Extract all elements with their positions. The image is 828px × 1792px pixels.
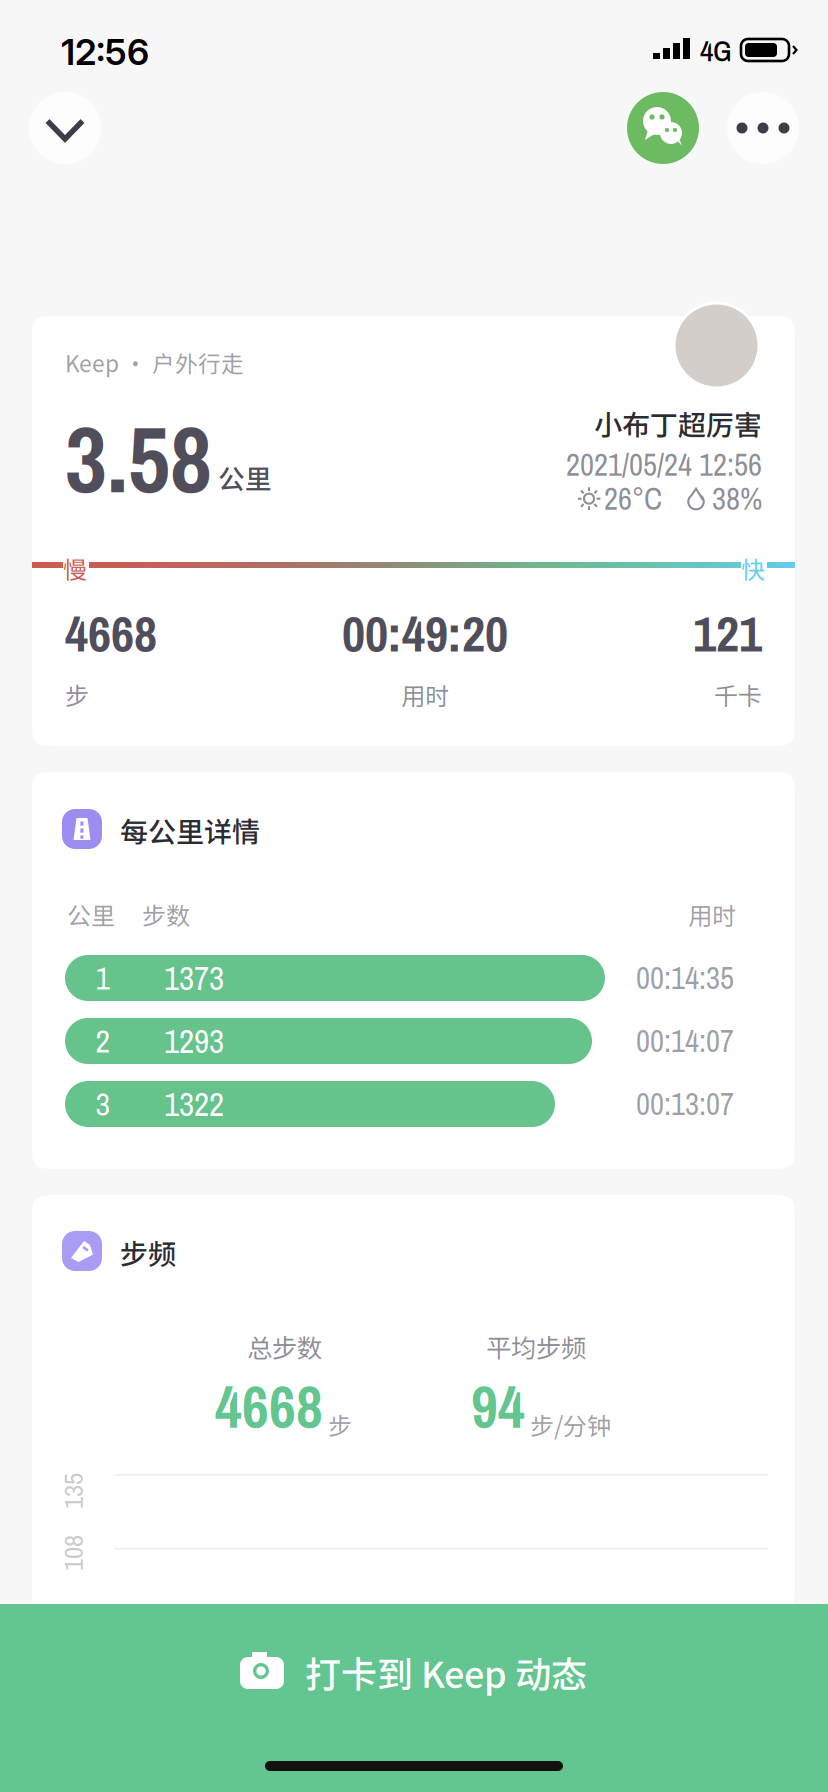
staticText: 2 <box>95 1019 110 1062</box>
staticText: 平均步频 <box>486 1328 586 1365</box>
staticText: 12:56 <box>61 30 149 74</box>
staticText: 1322 <box>164 1082 224 1126</box>
staticText: 3 <box>95 1082 110 1125</box>
staticText: 每公里详情 <box>120 810 260 850</box>
staticText: 94 <box>471 1367 525 1446</box>
staticText: 千卡 <box>714 677 762 712</box>
button[interactable]: 打卡到 Keep 动态 <box>0 1604 828 1792</box>
staticText: 121 <box>693 599 762 667</box>
staticText: 步 <box>65 677 89 712</box>
staticText: 用时 <box>688 897 736 932</box>
staticText: 3.58 <box>65 397 212 521</box>
staticText: 总步数 <box>247 1328 322 1365</box>
staticText: 1 <box>95 956 110 999</box>
staticText: Keep · 户外行走 <box>65 346 244 379</box>
staticText: 108 <box>55 1535 91 1571</box>
staticText: 1293 <box>164 1019 224 1063</box>
staticText: 1373 <box>164 956 224 1000</box>
staticText: 公里 <box>67 897 115 932</box>
staticText: 步频 <box>120 1232 176 1272</box>
staticText: 步 <box>328 1407 352 1442</box>
staticText: 26°C <box>604 478 662 519</box>
button[interactable]: Share to WeChat <box>627 92 699 164</box>
staticText: 4668 <box>65 599 157 667</box>
staticText: 小布丁超厉害 <box>594 403 762 443</box>
staticText: 00:49:20 <box>342 599 508 667</box>
staticText: 快 <box>741 551 765 586</box>
staticText: 135 <box>55 1473 91 1509</box>
staticText: 4G <box>700 31 732 70</box>
staticText: 打卡到 Keep 动态 <box>305 1646 587 1698</box>
button[interactable]: More <box>727 92 799 164</box>
staticText: 38% <box>712 478 762 519</box>
button[interactable]: Collapse <box>29 92 101 164</box>
staticText: 00:14:35 <box>636 957 734 999</box>
staticText: 4668 <box>215 1367 323 1446</box>
staticText: 00:14:07 <box>636 1020 734 1062</box>
staticText: 公里 <box>218 458 272 497</box>
staticText: 步数 <box>142 897 190 932</box>
staticText: 2021/05/24 12:56 <box>566 444 762 485</box>
staticText: 步/分钟 <box>530 1407 611 1442</box>
staticText: 00:13:07 <box>636 1083 734 1125</box>
staticText: 用时 <box>401 677 449 712</box>
staticText: 慢 <box>63 551 87 586</box>
